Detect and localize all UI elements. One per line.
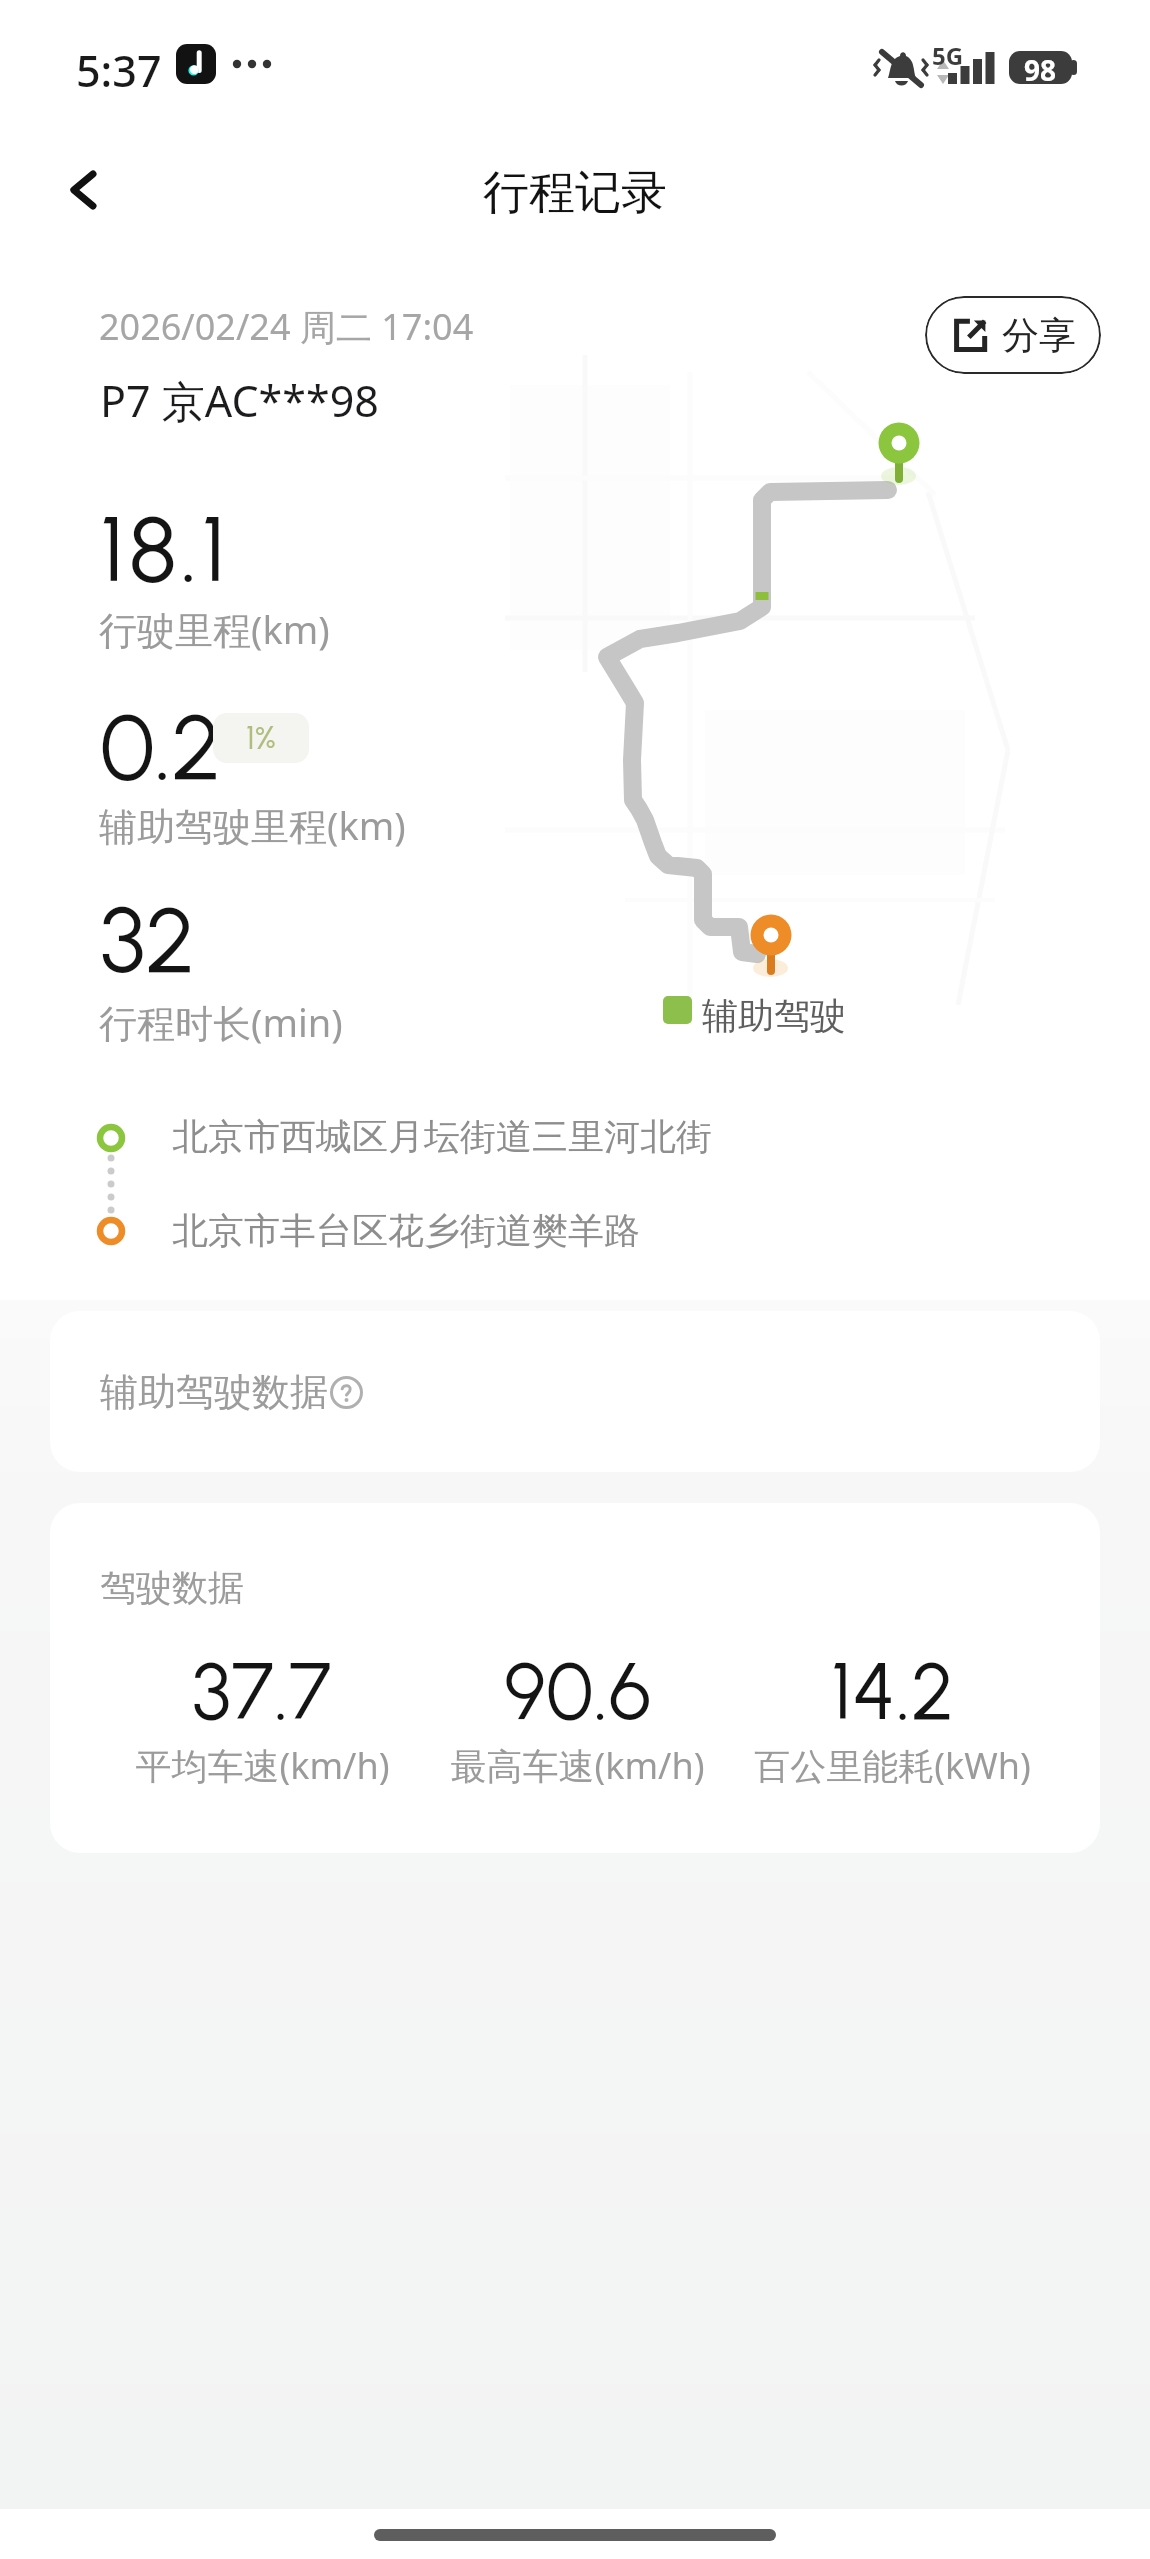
staticText: 行程记录 xyxy=(483,164,667,222)
staticText: 37.7 xyxy=(192,1644,332,1739)
button[interactable]: Back xyxy=(45,150,125,230)
staticText: 18.1 xyxy=(100,494,230,604)
staticText: 辅助驾驶里程(km) xyxy=(99,799,406,851)
staticText: 北京市丰台区花乡街道樊羊路 xyxy=(172,1208,640,1253)
button[interactable]: About assisted driving data xyxy=(331,1377,362,1408)
staticText: 行程时长(min) xyxy=(99,996,343,1048)
button[interactable]: 辅助驾驶数据 xyxy=(50,1311,1100,1472)
staticText: 32 xyxy=(100,885,196,995)
staticText: 2026/02/24 周二 17:04 xyxy=(99,302,474,351)
button[interactable]: 北京市西城区月坛街道三里河北街 xyxy=(172,1114,712,1159)
button[interactable]: Share trip xyxy=(925,296,1101,374)
staticText: 辅助驾驶 xyxy=(702,993,846,1038)
button[interactable]: 驾驶数据 xyxy=(50,1503,1100,1853)
staticText: 驾驶数据 xyxy=(100,1565,244,1610)
staticText: 分享 xyxy=(1002,312,1076,359)
staticText: 百公里能耗(kWh) xyxy=(754,1741,1031,1790)
staticText: 行驶里程(km) xyxy=(99,603,330,655)
staticText: 平均车速(km/h) xyxy=(135,1741,390,1790)
staticText: 辅助驾驶数据 xyxy=(100,1368,328,1416)
staticText: 北京市西城区月坛街道三里河北街 xyxy=(172,1114,712,1159)
staticText: 90.6 xyxy=(504,1644,652,1739)
staticText: 1% xyxy=(246,718,276,758)
staticText: 最高车速(km/h) xyxy=(450,1741,705,1790)
staticText: 98 xyxy=(1024,51,1057,84)
staticText: 0.2 xyxy=(100,692,222,802)
staticText: 14.2 xyxy=(831,1644,955,1739)
staticText: 5G xyxy=(932,39,964,72)
staticText: 5:37 xyxy=(76,41,162,100)
button[interactable]: 北京市丰台区花乡街道樊羊路 xyxy=(172,1208,640,1253)
staticText: P7 京AC***98 xyxy=(100,371,379,430)
